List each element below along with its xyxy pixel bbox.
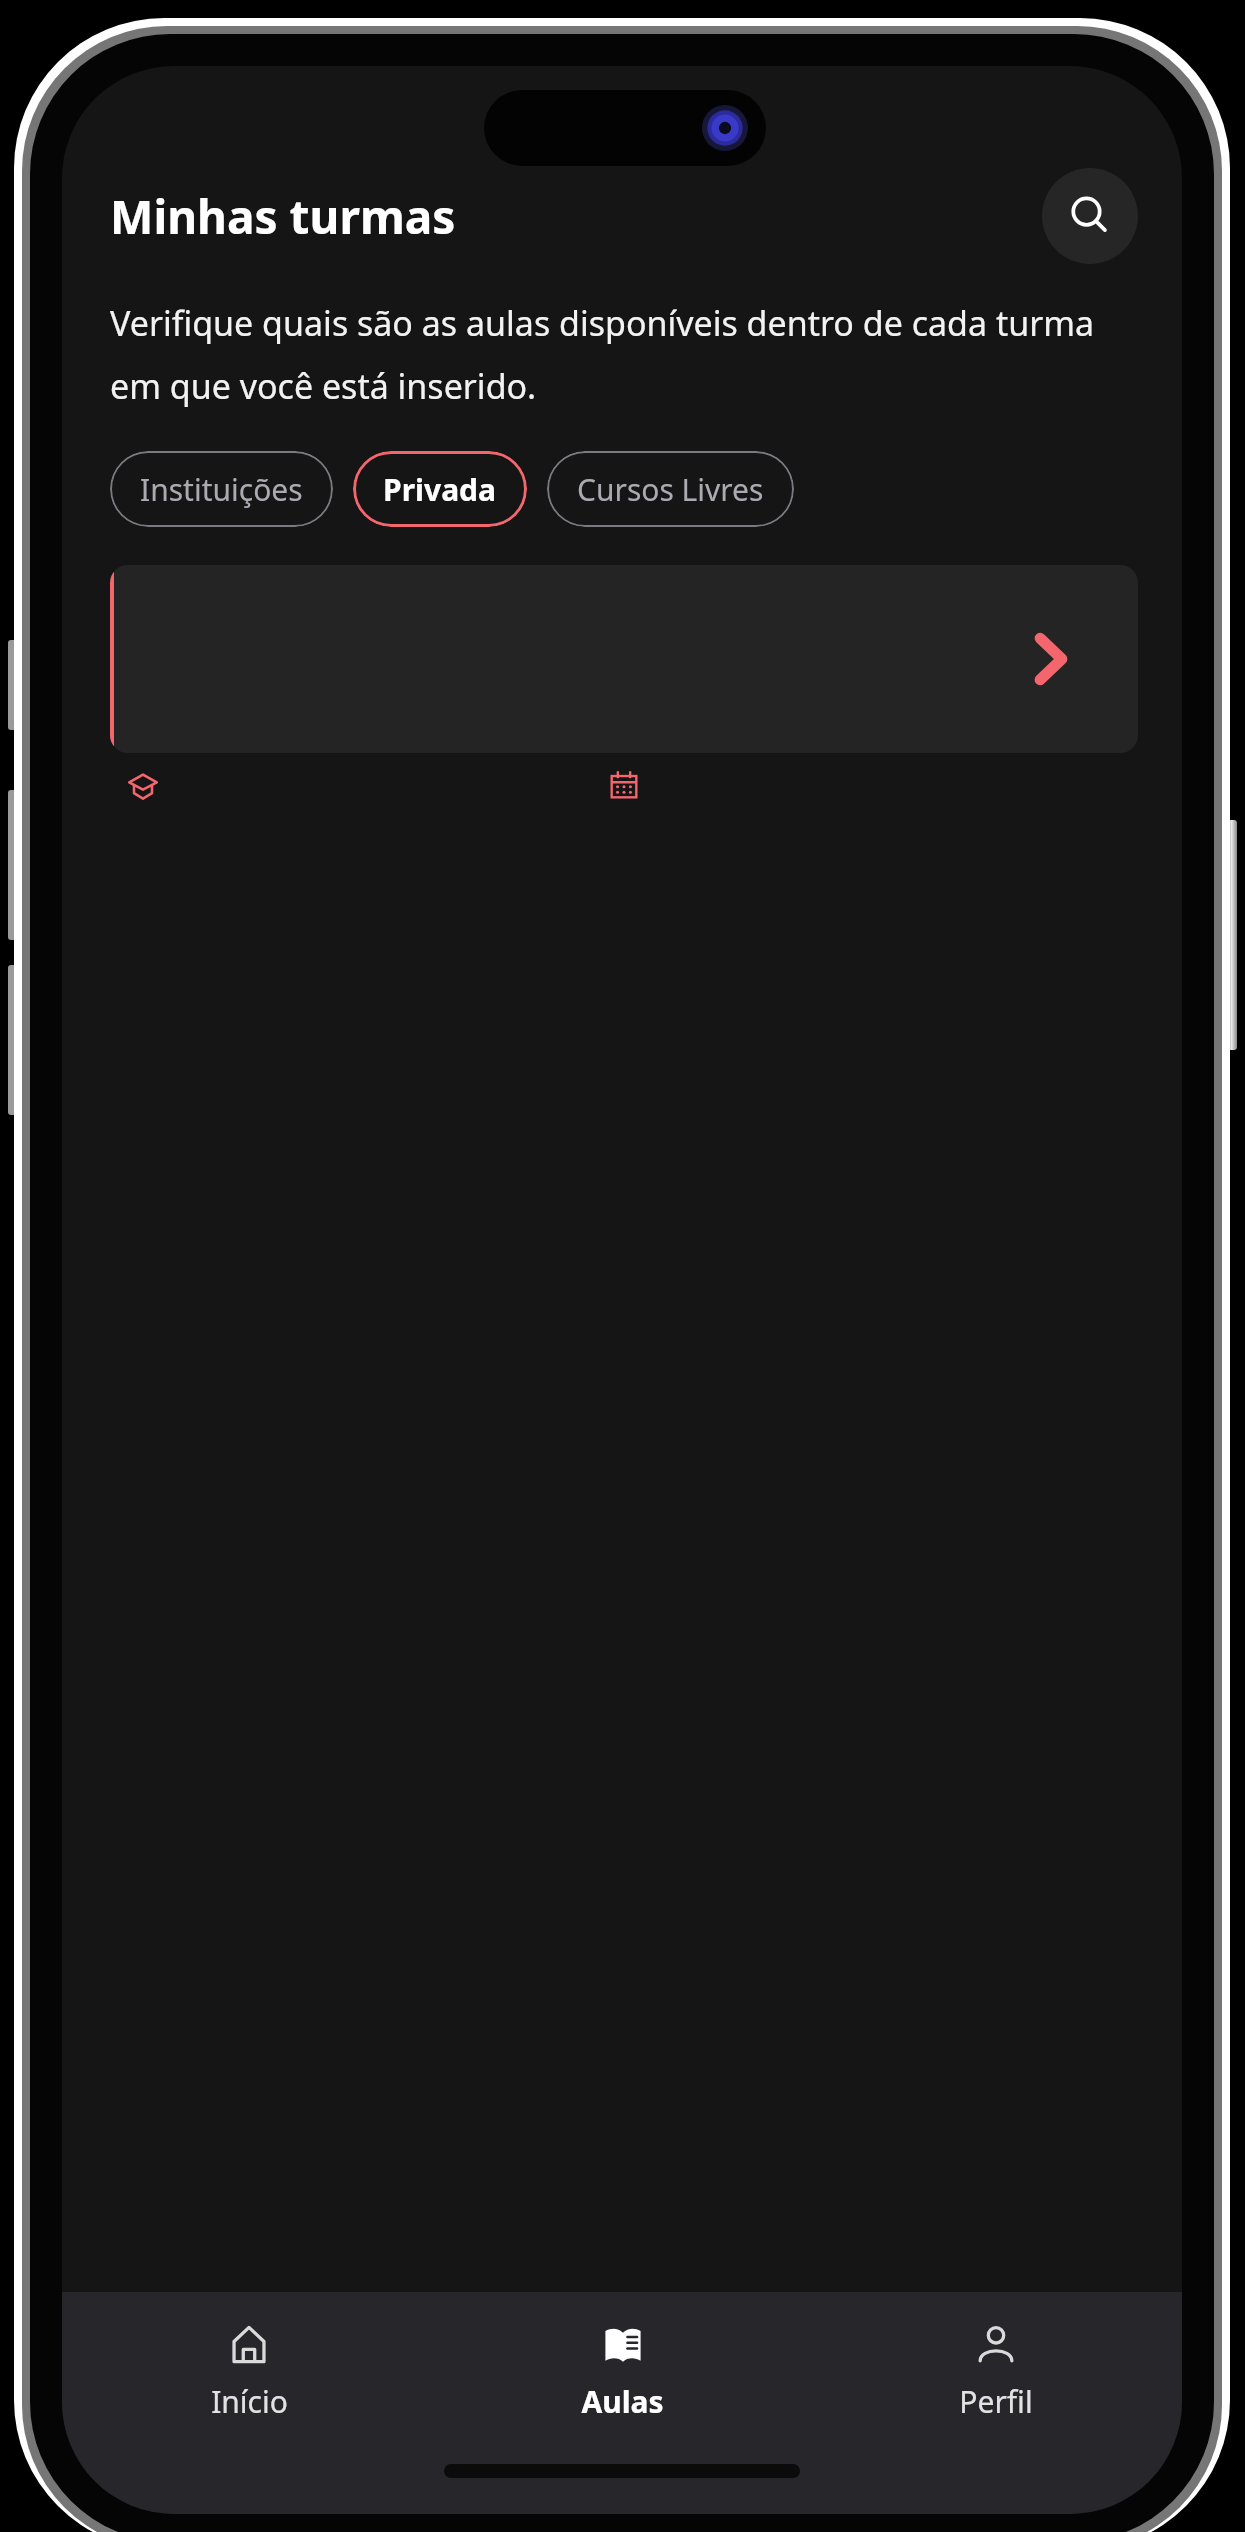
staticText: Perfil xyxy=(959,2381,1033,2422)
button[interactable] xyxy=(110,565,1138,753)
staticText: Início xyxy=(211,2381,288,2422)
staticText: Instituições xyxy=(140,469,303,510)
button[interactable]: Aulas xyxy=(436,2292,809,2452)
button[interactable]: Privada xyxy=(353,451,527,527)
button[interactable]: Perfil xyxy=(809,2292,1182,2452)
button[interactable]: Início xyxy=(62,2292,436,2452)
button[interactable]: Search xyxy=(1042,168,1138,264)
staticText: Aulas xyxy=(581,2381,664,2422)
staticText: Privada xyxy=(383,469,497,510)
staticText: Cursos Livres xyxy=(577,469,764,510)
button[interactable]: Cursos Livres xyxy=(547,451,794,527)
button[interactable]: Instituições xyxy=(110,451,333,527)
staticText: Minhas turmas xyxy=(110,185,1042,248)
staticText: Verifique quais são as aulas disponíveis… xyxy=(110,300,1138,409)
